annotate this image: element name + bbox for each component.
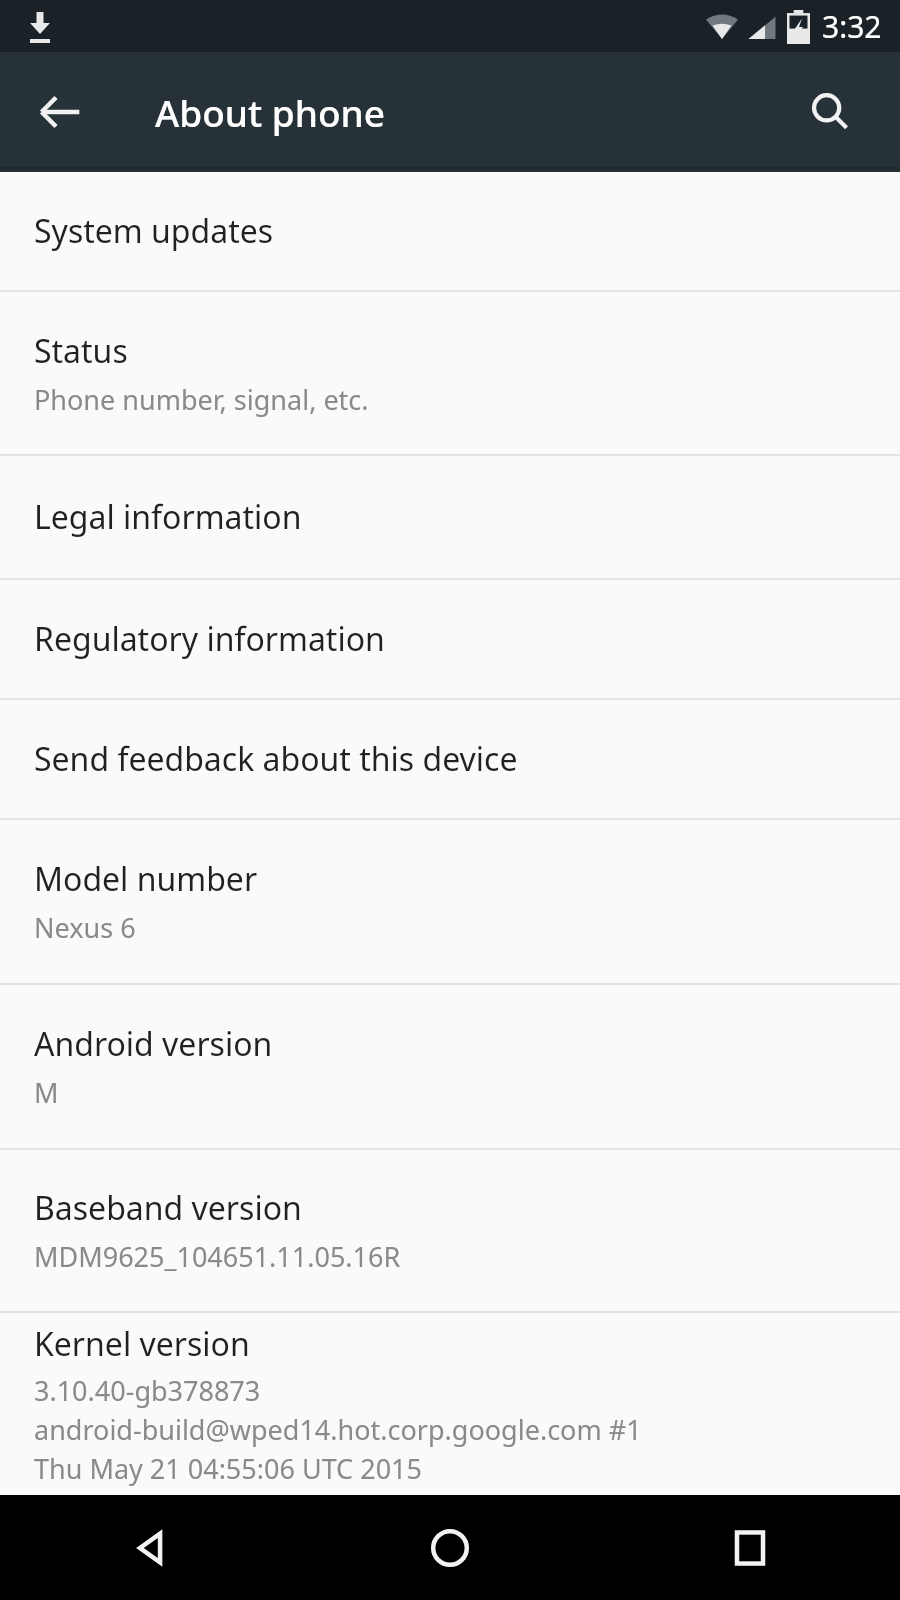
staticText: Regulatory information [34,617,385,661]
button[interactable]: Android version [0,985,900,1148]
staticText: Nexus 6 [34,909,136,946]
button[interactable]: Legal information [0,456,900,578]
staticText: Send feedback about this device [34,737,518,781]
staticText: About phone [155,87,385,137]
button[interactable]: Back [0,1495,300,1600]
button[interactable]: Recent apps [600,1495,900,1600]
button[interactable]: Regulatory information [0,580,900,698]
staticText: android-build@wped14.hot.corp.google.com… [34,1411,642,1448]
button[interactable]: Baseband version [0,1150,900,1311]
staticText: 3.10.40-gb378873 [34,1372,261,1409]
staticText: Baseband version [34,1186,302,1230]
button[interactable]: Send feedback about this device [0,700,900,818]
staticText: Phone number, signal, etc. [34,381,369,418]
button[interactable]: Home [300,1495,600,1600]
button[interactable]: Navigate up [18,70,102,154]
staticText: Legal information [34,495,302,539]
button[interactable]: Status [0,292,900,454]
staticText: 3:32 [822,6,882,47]
staticText: MDM9625_104651.11.05.16R [34,1238,401,1275]
staticText: M [34,1074,59,1111]
button[interactable]: System updates [0,172,900,290]
button[interactable]: Model number [0,820,900,983]
staticText: Kernel version [34,1322,250,1366]
staticText: Thu May 21 04:55:06 UTC 2015 [34,1450,422,1487]
staticText: Android version [34,1022,273,1066]
staticText: Model number [34,857,258,901]
staticText: System updates [34,209,274,253]
button[interactable]: Search [788,70,872,154]
staticText: Status [34,329,128,373]
button[interactable]: Kernel version [0,1313,900,1495]
